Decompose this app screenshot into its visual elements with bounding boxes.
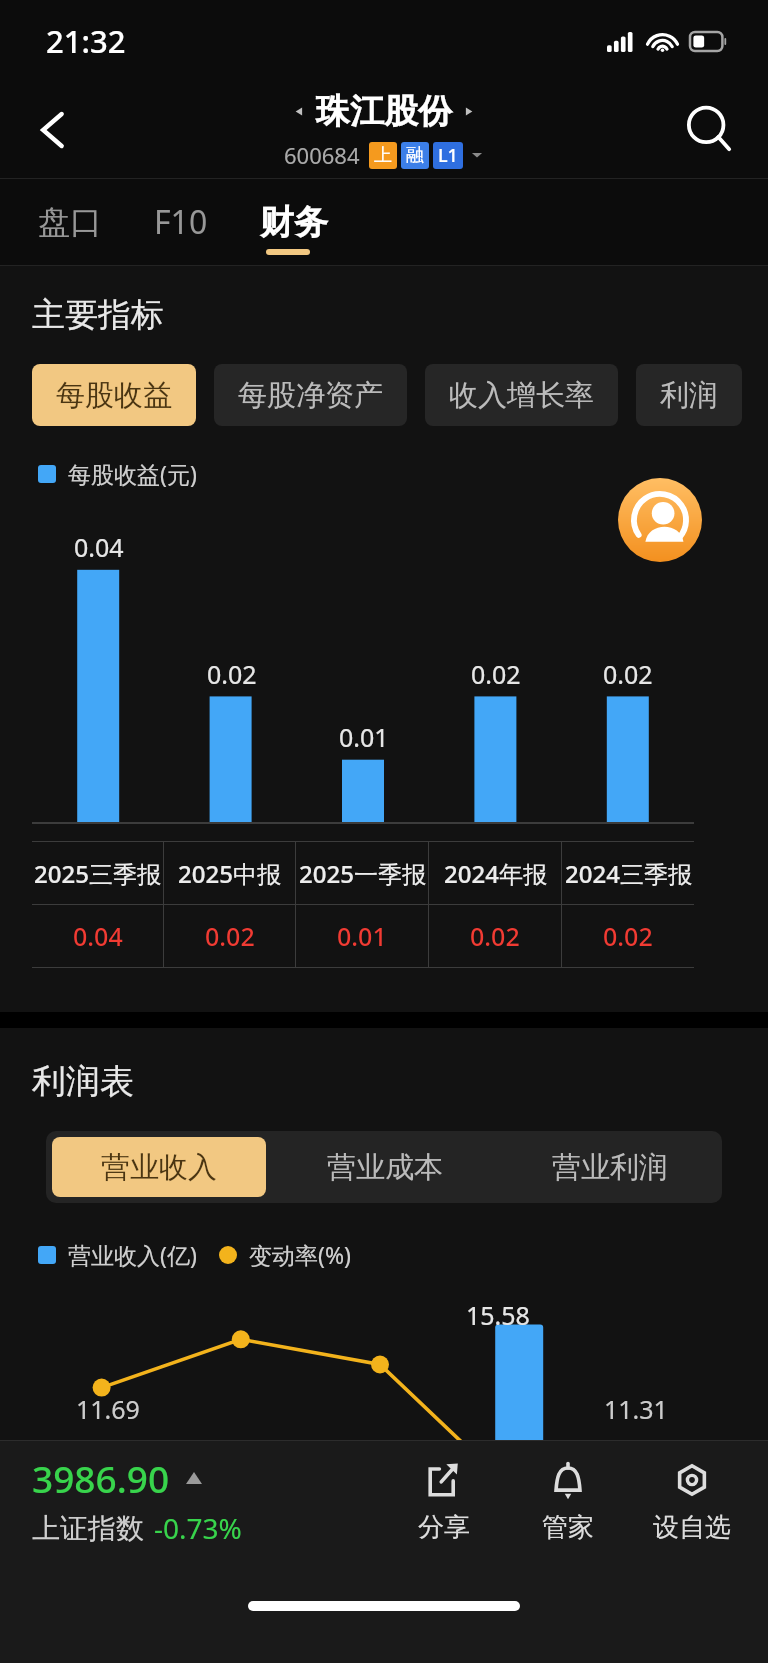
staticText: 融 xyxy=(406,144,424,167)
button[interactable]: 营业成本 xyxy=(278,1137,491,1197)
staticText: 2025三季报 xyxy=(34,857,161,890)
staticText: 0.04 xyxy=(74,530,124,564)
staticText: 21:32 xyxy=(46,20,126,62)
staticText: 盘口 xyxy=(38,202,102,242)
staticText: 0.01 xyxy=(339,720,389,754)
button[interactable]: 每股收益 xyxy=(32,364,196,426)
staticText: 0.01 xyxy=(337,919,387,953)
staticText: 0.04 xyxy=(73,919,123,953)
staticText: 0.02 xyxy=(207,657,257,691)
staticText: 每股净资产 xyxy=(238,377,383,414)
staticText: 收入增长率 xyxy=(449,377,594,414)
staticText: 0.02 xyxy=(603,919,653,953)
button[interactable]: 利润 xyxy=(636,364,742,426)
staticText: 11.31 xyxy=(604,1392,668,1426)
staticText: 0.02 xyxy=(470,919,520,953)
staticText: 变动率(%) xyxy=(249,1239,351,1270)
staticText: 利润表 xyxy=(32,1060,134,1103)
button[interactable]: 财务 xyxy=(252,185,336,260)
staticText: 2025中报 xyxy=(178,857,281,890)
staticText: 分享 xyxy=(418,1511,470,1544)
button[interactable]: 营业收入 xyxy=(52,1137,266,1197)
staticText: 上证指数 xyxy=(32,1511,144,1546)
button[interactable]: 管家 xyxy=(506,1451,630,1550)
staticText: 珠江股份 xyxy=(316,90,452,133)
staticText: 上 xyxy=(374,144,392,167)
staticText: 设自选 xyxy=(653,1511,731,1544)
staticText: 利润 xyxy=(660,377,718,414)
staticText: 3986.90 xyxy=(32,1453,170,1503)
staticText: 营业成本 xyxy=(327,1149,443,1186)
staticText: 主要指标 xyxy=(32,294,164,336)
staticText: 营业利润 xyxy=(552,1149,668,1186)
button[interactable]: 返回 xyxy=(22,98,86,162)
staticText: 营业收入(亿) xyxy=(68,1239,197,1270)
staticText: 每股收益 xyxy=(56,377,172,414)
staticText: 0.02 xyxy=(205,919,255,953)
staticText: 2025一季报 xyxy=(299,857,426,890)
staticText: -0.73% xyxy=(154,1509,242,1547)
button[interactable]: 设自选 xyxy=(630,1451,754,1550)
staticText: 11.69 xyxy=(76,1392,140,1426)
button[interactable]: F10 xyxy=(146,184,216,260)
button[interactable]: 盘口 xyxy=(30,186,110,258)
staticText: 0.02 xyxy=(603,657,653,691)
button[interactable]: 营业利润 xyxy=(503,1137,716,1197)
staticText: 15.58 xyxy=(466,1298,530,1332)
staticText: F10 xyxy=(154,200,208,244)
staticText: 财务 xyxy=(260,201,328,244)
staticText: 每股收益(元) xyxy=(68,458,197,489)
staticText: 2024三季报 xyxy=(565,857,692,890)
button[interactable]: 分享 xyxy=(382,1451,506,1550)
button[interactable]: 收入增长率 xyxy=(425,364,618,426)
staticText: 0.02 xyxy=(471,657,521,691)
button[interactable]: 搜索 xyxy=(678,98,742,162)
staticText: 管家 xyxy=(542,1511,594,1544)
staticText: L1 xyxy=(438,143,458,168)
button[interactable]: 在线客服 xyxy=(618,478,702,562)
staticText: 营业收入 xyxy=(101,1149,217,1186)
staticText: 600684 xyxy=(284,140,360,170)
staticText: 2024年报 xyxy=(444,857,547,890)
button[interactable]: 每股净资产 xyxy=(214,364,407,426)
